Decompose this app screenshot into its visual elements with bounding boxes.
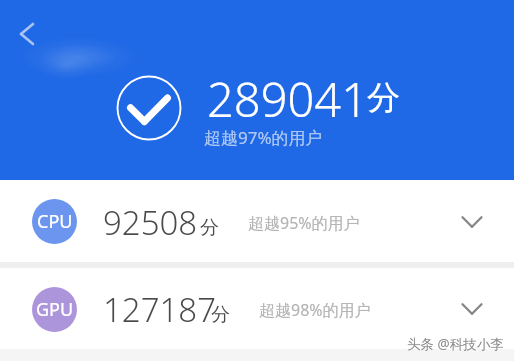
button[interactable]: Back [8, 15, 44, 51]
staticText: 127187 [103, 287, 217, 332]
staticText: 92508 [103, 200, 198, 245]
staticText: 分 [211, 303, 230, 327]
staticText: 超越97%的用户 [204, 126, 323, 149]
staticText: 分 [200, 216, 219, 240]
staticText: 头条 @科技小李 [407, 335, 504, 353]
staticText: CPU [37, 209, 73, 234]
staticText: GPU [36, 297, 74, 322]
staticText: 超越95%的用户 [248, 212, 360, 234]
button[interactable]: Expand [457, 294, 487, 324]
button[interactable]: Expand [457, 207, 487, 237]
button[interactable]: GPU [0, 268, 514, 349]
staticText: 分 [367, 77, 400, 119]
button[interactable]: CPU [0, 180, 514, 262]
staticText: 289041 [207, 67, 369, 131]
staticText: 超越98%的用户 [259, 299, 371, 321]
